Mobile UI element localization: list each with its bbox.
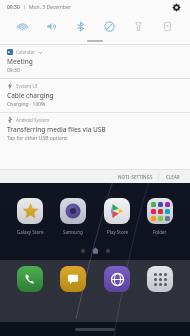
button[interactable]: Samsung <box>54 196 92 235</box>
button[interactable]: Screen lock <box>157 16 178 37</box>
button[interactable]: Settings <box>170 1 183 14</box>
staticText: Messages <box>63 297 84 303</box>
button[interactable]: Play Store <box>98 196 136 235</box>
button[interactable]: Sound <box>41 16 62 37</box>
button[interactable]: Phone <box>11 264 49 303</box>
staticText: Folder <box>153 229 167 235</box>
button[interactable]: NOTI. SETTINGS <box>113 172 158 182</box>
button[interactable]: CLEAR <box>159 172 187 182</box>
staticText: System UI <box>16 83 38 89</box>
staticText: 09:30 <box>7 4 20 11</box>
button[interactable]: Messages <box>54 264 92 303</box>
button[interactable]: Do not disturb <box>99 16 120 37</box>
staticText: Meeting <box>7 57 33 66</box>
staticText: Cable charging <box>7 91 54 100</box>
button[interactable]: System UI <box>0 79 190 112</box>
staticText: Android System <box>16 117 50 123</box>
button[interactable]: Bluetooth <box>70 16 91 37</box>
staticText: Mon, 3 December <box>29 4 71 11</box>
staticText: Galaxy Store <box>17 229 44 235</box>
button[interactable]: Folder <box>141 196 179 235</box>
staticText: Transferring media files via USB <box>7 125 106 134</box>
staticText: Charging · 100% <box>7 101 46 108</box>
button[interactable]: Galaxy Store <box>11 196 49 235</box>
staticText: Tap for other USB options <box>7 135 68 142</box>
staticText: Play Store <box>107 229 128 235</box>
staticText: CLEAR <box>166 174 180 180</box>
staticText: Samsung <box>63 229 83 235</box>
button[interactable]: Internet <box>98 264 136 303</box>
staticText: Internet <box>108 297 126 303</box>
staticText: | <box>23 4 26 11</box>
button[interactable]: Flashlight <box>128 16 149 37</box>
button[interactable]: Android System <box>0 113 190 146</box>
staticText: 09:30 <box>7 67 20 74</box>
button[interactable]: Calendar <box>0 45 190 78</box>
staticText: Calendar <box>16 49 35 55</box>
button[interactable]: Apps <box>141 264 179 303</box>
staticText: NOTI. SETTINGS <box>118 174 153 180</box>
button[interactable]: Wi-Fi <box>12 16 33 37</box>
